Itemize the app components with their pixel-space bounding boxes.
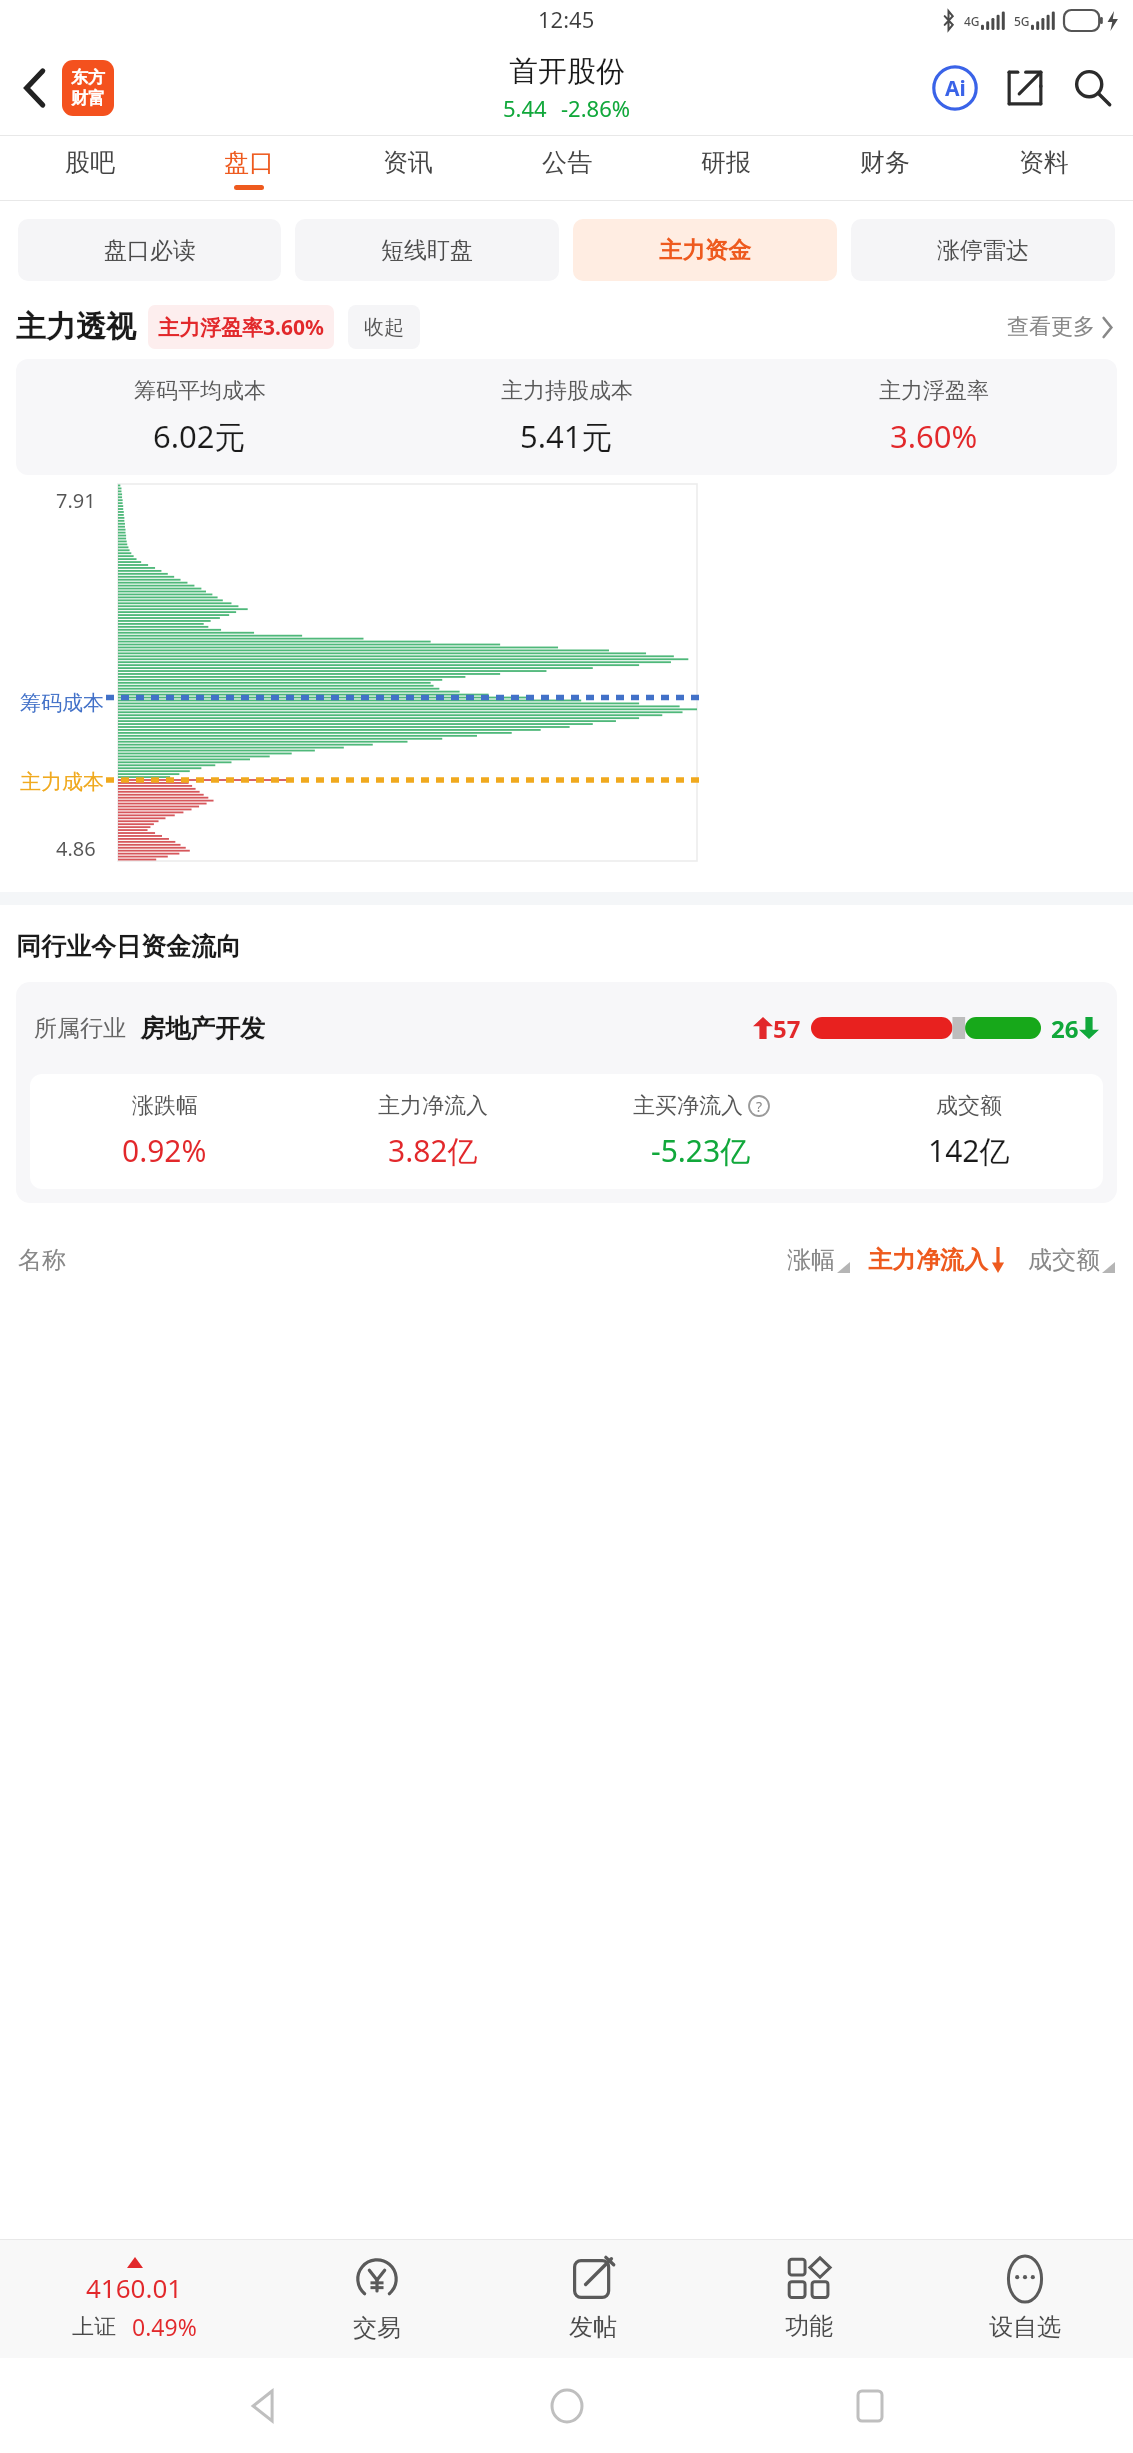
staticText: 5G: [1014, 13, 1030, 29]
button[interactable]: 主力浮盈率3.60%: [158, 305, 324, 349]
button[interactable]: 交易: [269, 2240, 485, 2358]
button[interactable]: 财务: [805, 136, 964, 200]
button[interactable]: Recents: [830, 2366, 910, 2446]
staticText: 主力成本: [20, 769, 104, 795]
staticText: 研报: [701, 147, 751, 178]
staticText: 涨幅: [787, 1245, 835, 1275]
button[interactable]: 资料: [964, 136, 1123, 200]
staticText: 财富: [71, 88, 105, 109]
button[interactable]: AI assistant: [929, 62, 981, 114]
staticText: 设自选: [989, 2312, 1061, 2342]
button[interactable]: 股吧: [10, 136, 169, 200]
staticText: 房地产开发: [140, 1013, 265, 1044]
staticText: 筹码成本: [20, 690, 104, 716]
staticText: 短线盯盘: [381, 236, 473, 265]
staticText: 发帖: [569, 2312, 617, 2342]
button[interactable]: 资讯: [328, 136, 487, 200]
staticText: 主买净流入: [633, 1092, 743, 1120]
staticText: 5.41元: [520, 415, 613, 457]
staticText: 4.86: [56, 835, 96, 862]
staticText: 主力净流入: [378, 1092, 488, 1120]
staticText: 4G: [964, 13, 980, 29]
staticText: 股吧: [65, 147, 115, 178]
staticText: -5.23亿: [651, 1130, 751, 1171]
button[interactable]: 收起: [364, 305, 404, 349]
button[interactable]: Back: [223, 2366, 303, 2446]
staticText: 筹码平均成本: [134, 377, 266, 405]
staticText: 主力透视: [16, 308, 136, 346]
button[interactable]: East Money: [62, 60, 114, 116]
staticText: -2.86%: [561, 93, 631, 123]
button[interactable]: 4160.01: [0, 2257, 269, 2342]
button[interactable]: Back: [8, 61, 62, 115]
staticText: 涨跌幅: [132, 1092, 198, 1120]
staticText: 主力资金: [659, 236, 751, 265]
staticText: 主力浮盈率: [879, 377, 989, 405]
button[interactable]: 研报: [646, 136, 805, 200]
staticText: 功能: [785, 2311, 833, 2341]
button[interactable]: 查看更多: [1003, 309, 1117, 345]
staticText: 5.44: [503, 93, 547, 123]
button[interactable]: 成交额: [1028, 1245, 1115, 1275]
staticText: 0.92%: [122, 1130, 207, 1171]
button[interactable]: 盘口: [169, 136, 328, 200]
button[interactable]: Home: [527, 2366, 607, 2446]
staticText: 所属行业: [34, 1014, 126, 1043]
staticText: 3.60%: [890, 415, 978, 457]
staticText: 名称: [18, 1245, 66, 1275]
staticText: 6.02元: [153, 415, 246, 457]
staticText: 成交额: [936, 1092, 1002, 1120]
staticText: 同行业今日资金流向: [16, 931, 241, 962]
staticText: 首开股份: [509, 53, 625, 90]
staticText: 资料: [1019, 147, 1069, 178]
staticText: 7.91: [56, 487, 96, 514]
staticText: 主力净流入: [868, 1245, 988, 1275]
staticText: 财务: [860, 147, 910, 178]
staticText: 盘口: [224, 147, 274, 178]
staticText: 成交额: [1028, 1245, 1100, 1275]
button[interactable]: 主力资金: [573, 219, 837, 281]
staticText: 查看更多: [1007, 313, 1095, 341]
staticText: 东方: [71, 67, 105, 88]
staticText: 公告: [542, 147, 592, 178]
button[interactable]: 公告: [487, 136, 646, 200]
staticText: 3.82亿: [388, 1130, 478, 1171]
staticText: 交易: [353, 2313, 401, 2343]
button[interactable]: 涨停雷达: [851, 219, 1115, 281]
staticText: 盘口必读: [104, 236, 196, 265]
button[interactable]: Share: [999, 62, 1051, 114]
staticText: 主力浮盈率3.60%: [158, 313, 324, 342]
staticText: 收起: [364, 315, 404, 340]
button[interactable]: 设自选: [917, 2240, 1133, 2358]
button[interactable]: 涨幅: [787, 1245, 850, 1275]
staticText: 4160.01: [86, 2270, 183, 2305]
staticText: ?: [756, 1097, 763, 1116]
button[interactable]: 功能: [701, 2240, 917, 2358]
button[interactable]: 所属行业: [16, 982, 1117, 1203]
staticText: 上证: [72, 2313, 116, 2341]
staticText: 主力持股成本: [501, 377, 633, 405]
staticText: Ai: [945, 74, 966, 103]
button[interactable]: 短线盯盘: [295, 219, 559, 281]
button[interactable]: Search: [1067, 62, 1119, 114]
staticText: 26: [1051, 1012, 1079, 1045]
staticText: 涨停雷达: [937, 236, 1029, 265]
staticText: 57: [773, 1012, 801, 1045]
staticText: 142亿: [928, 1130, 1010, 1171]
button[interactable]: 筹码平均成本: [16, 359, 1117, 475]
button[interactable]: 主力净流入: [868, 1245, 1006, 1275]
staticText: 12:45: [538, 4, 595, 34]
button[interactable]: 发帖: [485, 2240, 701, 2358]
staticText: 资讯: [383, 147, 433, 178]
button[interactable]: 盘口必读: [18, 219, 281, 281]
staticText: 0.49%: [132, 2311, 197, 2342]
